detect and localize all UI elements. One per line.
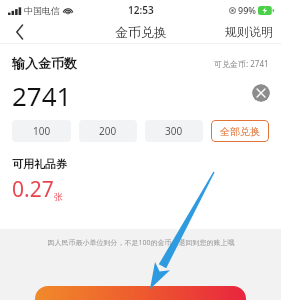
staticText: 输入金币数: [12, 55, 77, 71]
button[interactable]: 全部兑换: [211, 120, 269, 142]
staticText: 2741: [12, 78, 72, 108]
button[interactable]: 100: [12, 120, 71, 142]
staticText: 张: [54, 191, 63, 202]
button[interactable]: 返回: [0, 20, 40, 43]
staticText: 300: [165, 124, 183, 138]
staticText: 全部兑换: [220, 125, 260, 138]
staticText: 200: [99, 124, 117, 138]
staticText: 规则说明: [225, 24, 273, 39]
staticText: 金币兑换: [115, 24, 167, 40]
staticText: 中国电信: [24, 5, 60, 16]
staticText: 可兑金币: 2741: [214, 58, 269, 69]
staticText: 因人民币最小单位到分，不足100的金币会退回到您的账上哦: [47, 238, 235, 248]
staticText: 100: [33, 124, 51, 138]
button[interactable]: 200: [79, 120, 137, 142]
button[interactable]: 300: [145, 120, 203, 142]
staticText: 可用礼品券: [12, 157, 67, 171]
staticText: 12:53: [128, 3, 154, 17]
staticText: 99%: [238, 4, 256, 16]
button[interactable]: 规则说明: [225, 24, 273, 39]
staticText: 0.27: [12, 175, 54, 204]
button[interactable]: [35, 286, 246, 300]
button[interactable]: 清除: [252, 84, 270, 102]
